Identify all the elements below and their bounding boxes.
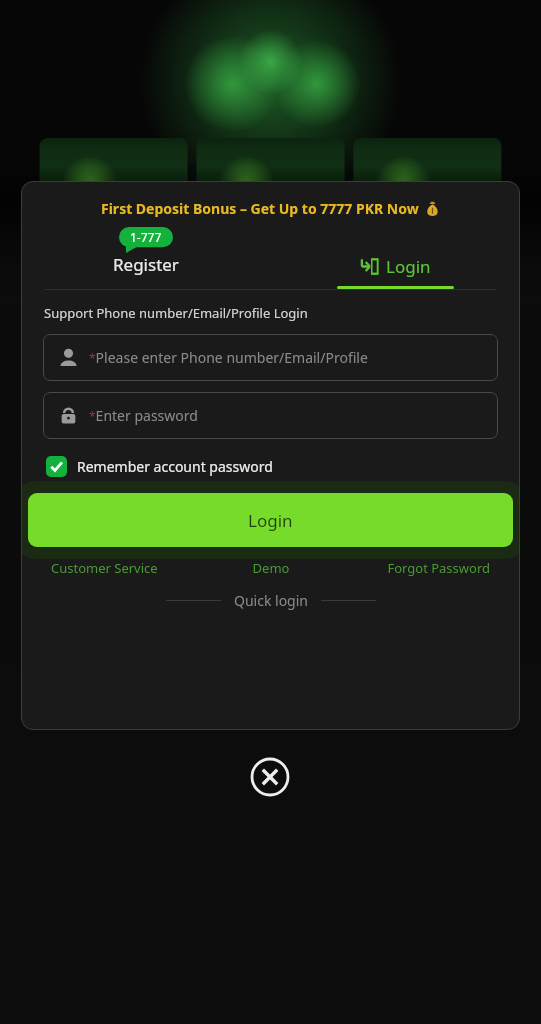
button[interactable]: Login <box>28 493 513 547</box>
staticText: First Deposit Bonus – Get Up to 7777 PKR… <box>101 199 419 218</box>
staticText: Login <box>386 255 431 278</box>
other: Login <box>360 257 379 276</box>
button[interactable]: Forgot Password <box>344 559 490 577</box>
button[interactable]: 1-777 <box>21 227 270 289</box>
staticText: Quick login <box>234 591 308 610</box>
staticText: Demo <box>198 559 344 577</box>
button[interactable]: *Please enter Phone number/Email/Profile <box>43 334 498 381</box>
button[interactable]: Demo <box>198 559 344 577</box>
button[interactable]: Customer Service <box>51 559 198 577</box>
staticText: *Enter password <box>89 406 198 425</box>
staticText: Forgot Password <box>344 559 490 577</box>
button[interactable]: Login <box>270 227 520 289</box>
staticText: *Please enter Phone number/Email/Profile <box>89 348 368 367</box>
staticText: Support Phone number/Email/Profile Login <box>44 304 308 322</box>
button[interactable]: *Enter password <box>43 392 498 439</box>
staticText: Customer Service <box>51 559 198 577</box>
button[interactable]: Remember account password <box>46 456 273 477</box>
button[interactable]: Close <box>248 755 292 799</box>
staticText: 1-777 <box>130 229 162 245</box>
staticText: Login <box>248 509 293 532</box>
staticText: Register <box>113 253 179 276</box>
staticText: Remember account password <box>77 457 273 476</box>
